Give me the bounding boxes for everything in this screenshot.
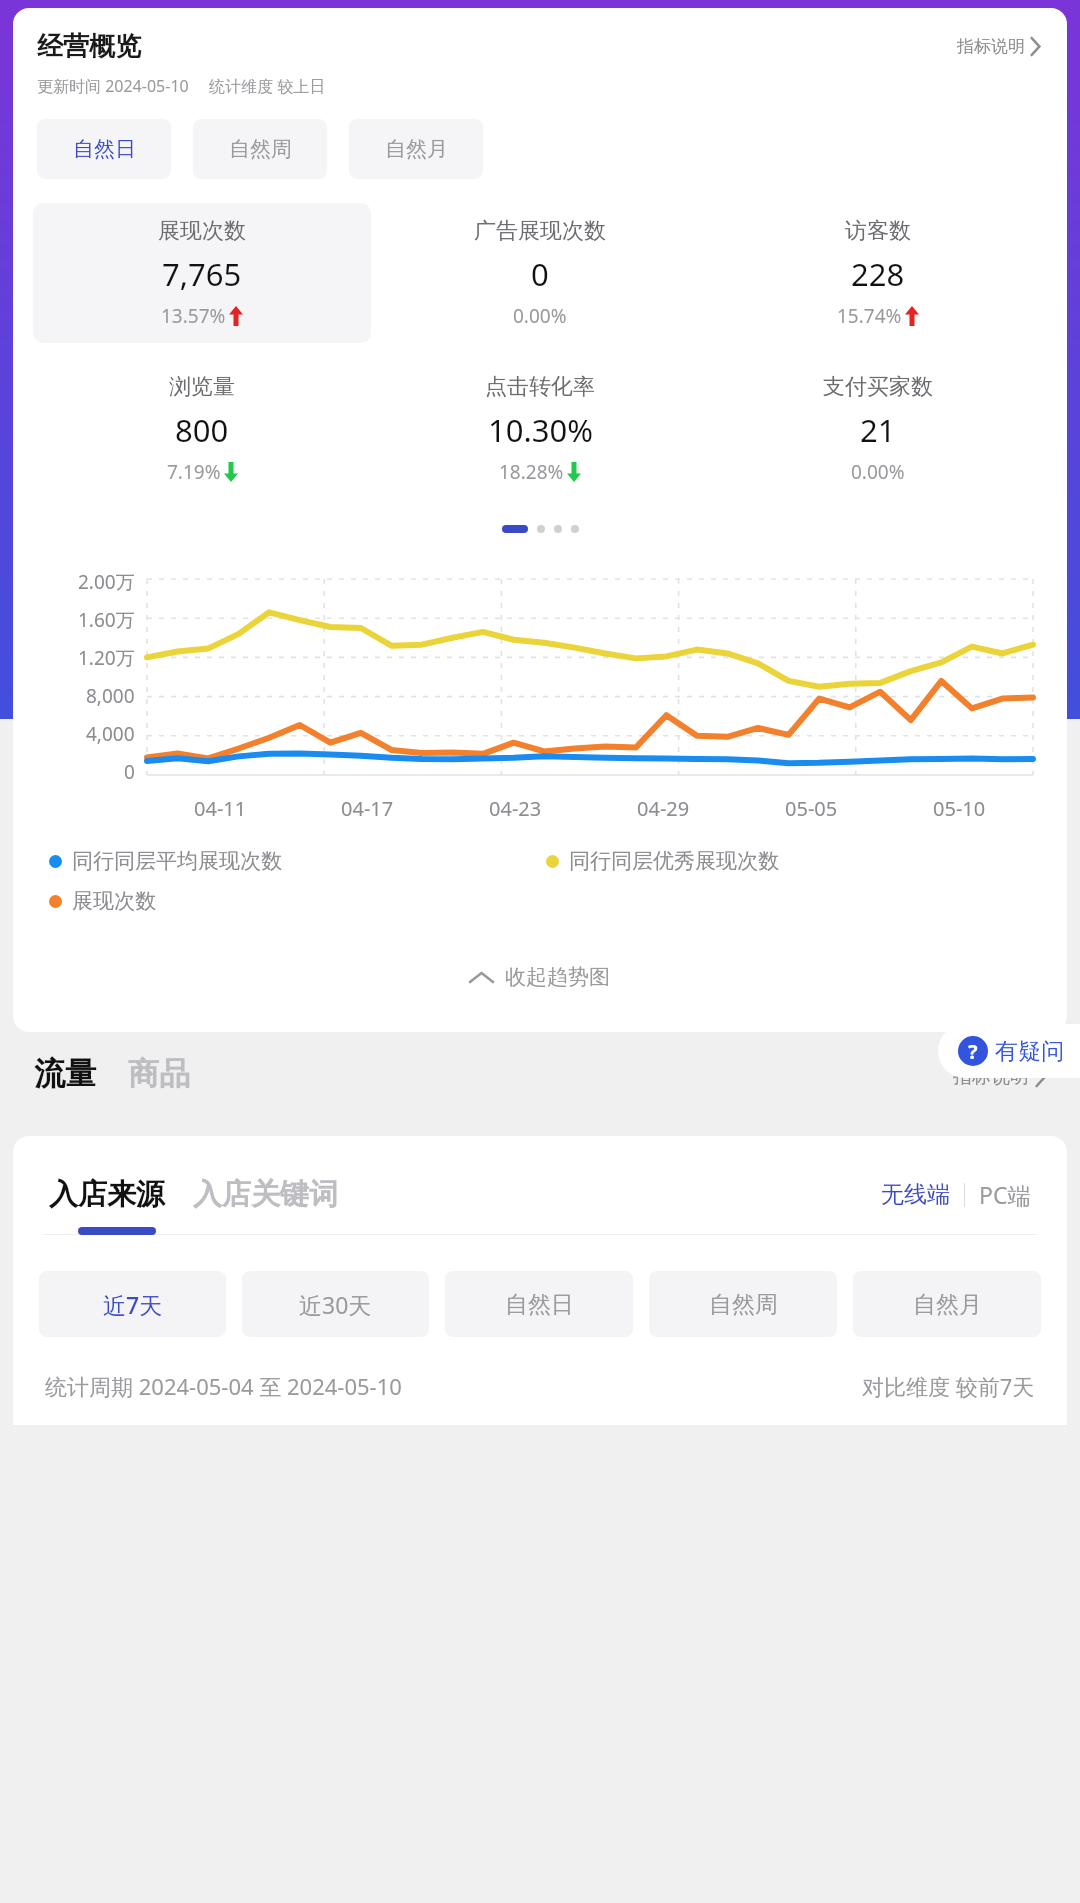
button[interactable]: 自然月 xyxy=(853,1271,1041,1337)
staticText: ? xyxy=(968,1038,978,1065)
staticText: 展现次数 xyxy=(158,217,246,245)
staticText: 更新时间 2024-05-10 xyxy=(37,75,189,97)
staticText: 自然周 xyxy=(709,1290,778,1319)
staticText: 支付买家数 xyxy=(823,373,933,401)
button[interactable]: PC端 xyxy=(979,1179,1031,1210)
button[interactable]: 支付买家数 xyxy=(709,359,1047,499)
staticText: 自然日 xyxy=(505,1290,574,1319)
staticText: 对比维度 较前7天 xyxy=(862,1371,1035,1401)
staticText: 浏览量 xyxy=(169,373,235,401)
staticText: 10.30% xyxy=(488,409,593,451)
button[interactable]: 近30天 xyxy=(242,1271,429,1337)
button[interactable]: 商品 xyxy=(128,1054,190,1093)
staticText: 有疑问 xyxy=(995,1037,1064,1066)
button[interactable]: 入店关键词 xyxy=(193,1176,338,1213)
staticText: 228 xyxy=(851,253,905,295)
staticText: 收起趋势图 xyxy=(505,964,610,990)
button[interactable]: 近7天 xyxy=(39,1271,226,1337)
staticText: 广告展现次数 xyxy=(474,217,606,245)
button[interactable]: 自然月 xyxy=(349,119,483,179)
staticText: 近30天 xyxy=(299,1289,372,1320)
button[interactable]: 自然日 xyxy=(445,1271,633,1337)
staticText: 0 xyxy=(124,759,135,785)
staticText: 指标说明 xyxy=(953,1065,1029,1089)
staticText: 统计维度 较上日 xyxy=(209,75,326,97)
other: 帮助 xyxy=(958,1036,988,1066)
staticText: 同行同层优秀展现次数 xyxy=(569,848,779,874)
staticText: 展现次数 xyxy=(72,888,156,914)
staticText: 15.74% xyxy=(837,303,902,329)
staticText: 商品 xyxy=(128,1054,190,1093)
staticText: 入店来源 xyxy=(49,1176,165,1213)
button[interactable]: 帮助 xyxy=(938,1024,1080,1078)
staticText: 指标说明 xyxy=(957,36,1025,57)
staticText: 入店关键词 xyxy=(193,1176,338,1213)
staticText: 05-10 xyxy=(933,795,986,822)
staticText: 0 xyxy=(531,253,549,295)
button[interactable]: 指标说明 xyxy=(955,32,1043,61)
staticText: 统计周期 2024-05-04 至 2024-05-10 xyxy=(45,1371,402,1401)
staticText: 04-23 xyxy=(489,795,542,822)
staticText: 无线端 xyxy=(881,1180,950,1209)
button[interactable]: 浏览量 xyxy=(33,359,371,499)
staticText: 0.00% xyxy=(851,459,905,485)
staticText: 04-11 xyxy=(194,795,247,822)
staticText: 自然日 xyxy=(73,136,136,162)
staticText: 同行同层平均展现次数 xyxy=(72,848,282,874)
staticText: 访客数 xyxy=(845,217,911,245)
button[interactable]: 自然周 xyxy=(649,1271,837,1337)
staticText: 2.00万 xyxy=(78,569,135,595)
button[interactable]: 无线端 xyxy=(881,1180,950,1209)
staticText: 04-17 xyxy=(341,795,394,822)
staticText: 8,000 xyxy=(86,683,135,709)
staticText: 7.19% xyxy=(167,459,221,485)
staticText: 1.60万 xyxy=(78,607,135,633)
staticText: 1.20万 xyxy=(78,645,135,671)
staticText: 点击转化率 xyxy=(485,373,595,401)
staticText: 0.00% xyxy=(513,303,567,329)
staticText: PC端 xyxy=(979,1179,1031,1210)
staticText: 流量 xyxy=(34,1054,96,1093)
button[interactable]: 自然周 xyxy=(193,119,327,179)
button[interactable]: 流量 xyxy=(34,1054,96,1093)
staticText: 18.28% xyxy=(499,459,564,485)
button[interactable]: 广告展现次数 xyxy=(371,203,709,343)
staticText: 800 xyxy=(175,409,229,451)
staticText: 自然周 xyxy=(229,136,292,162)
staticText: 04-29 xyxy=(637,795,690,822)
button[interactable]: 展现次数 xyxy=(33,203,371,343)
button[interactable]: 收起趋势图 xyxy=(13,958,1067,996)
staticText: 4,000 xyxy=(86,721,135,747)
staticText: 自然月 xyxy=(385,136,448,162)
button[interactable]: 访客数 xyxy=(709,203,1047,343)
staticText: 近7天 xyxy=(103,1289,163,1320)
staticText: 7,765 xyxy=(162,253,242,295)
button[interactable]: 点击转化率 xyxy=(371,359,709,499)
staticText: 自然月 xyxy=(913,1290,982,1319)
staticText: 经营概览 xyxy=(37,30,141,63)
staticText: 05-05 xyxy=(785,795,838,822)
staticText: 13.57% xyxy=(161,303,226,329)
button[interactable]: 入店来源 xyxy=(49,1176,165,1213)
staticText: 21 xyxy=(860,409,896,451)
button[interactable]: 自然日 xyxy=(37,119,171,179)
button[interactable]: 指标说明 xyxy=(953,1065,1046,1093)
